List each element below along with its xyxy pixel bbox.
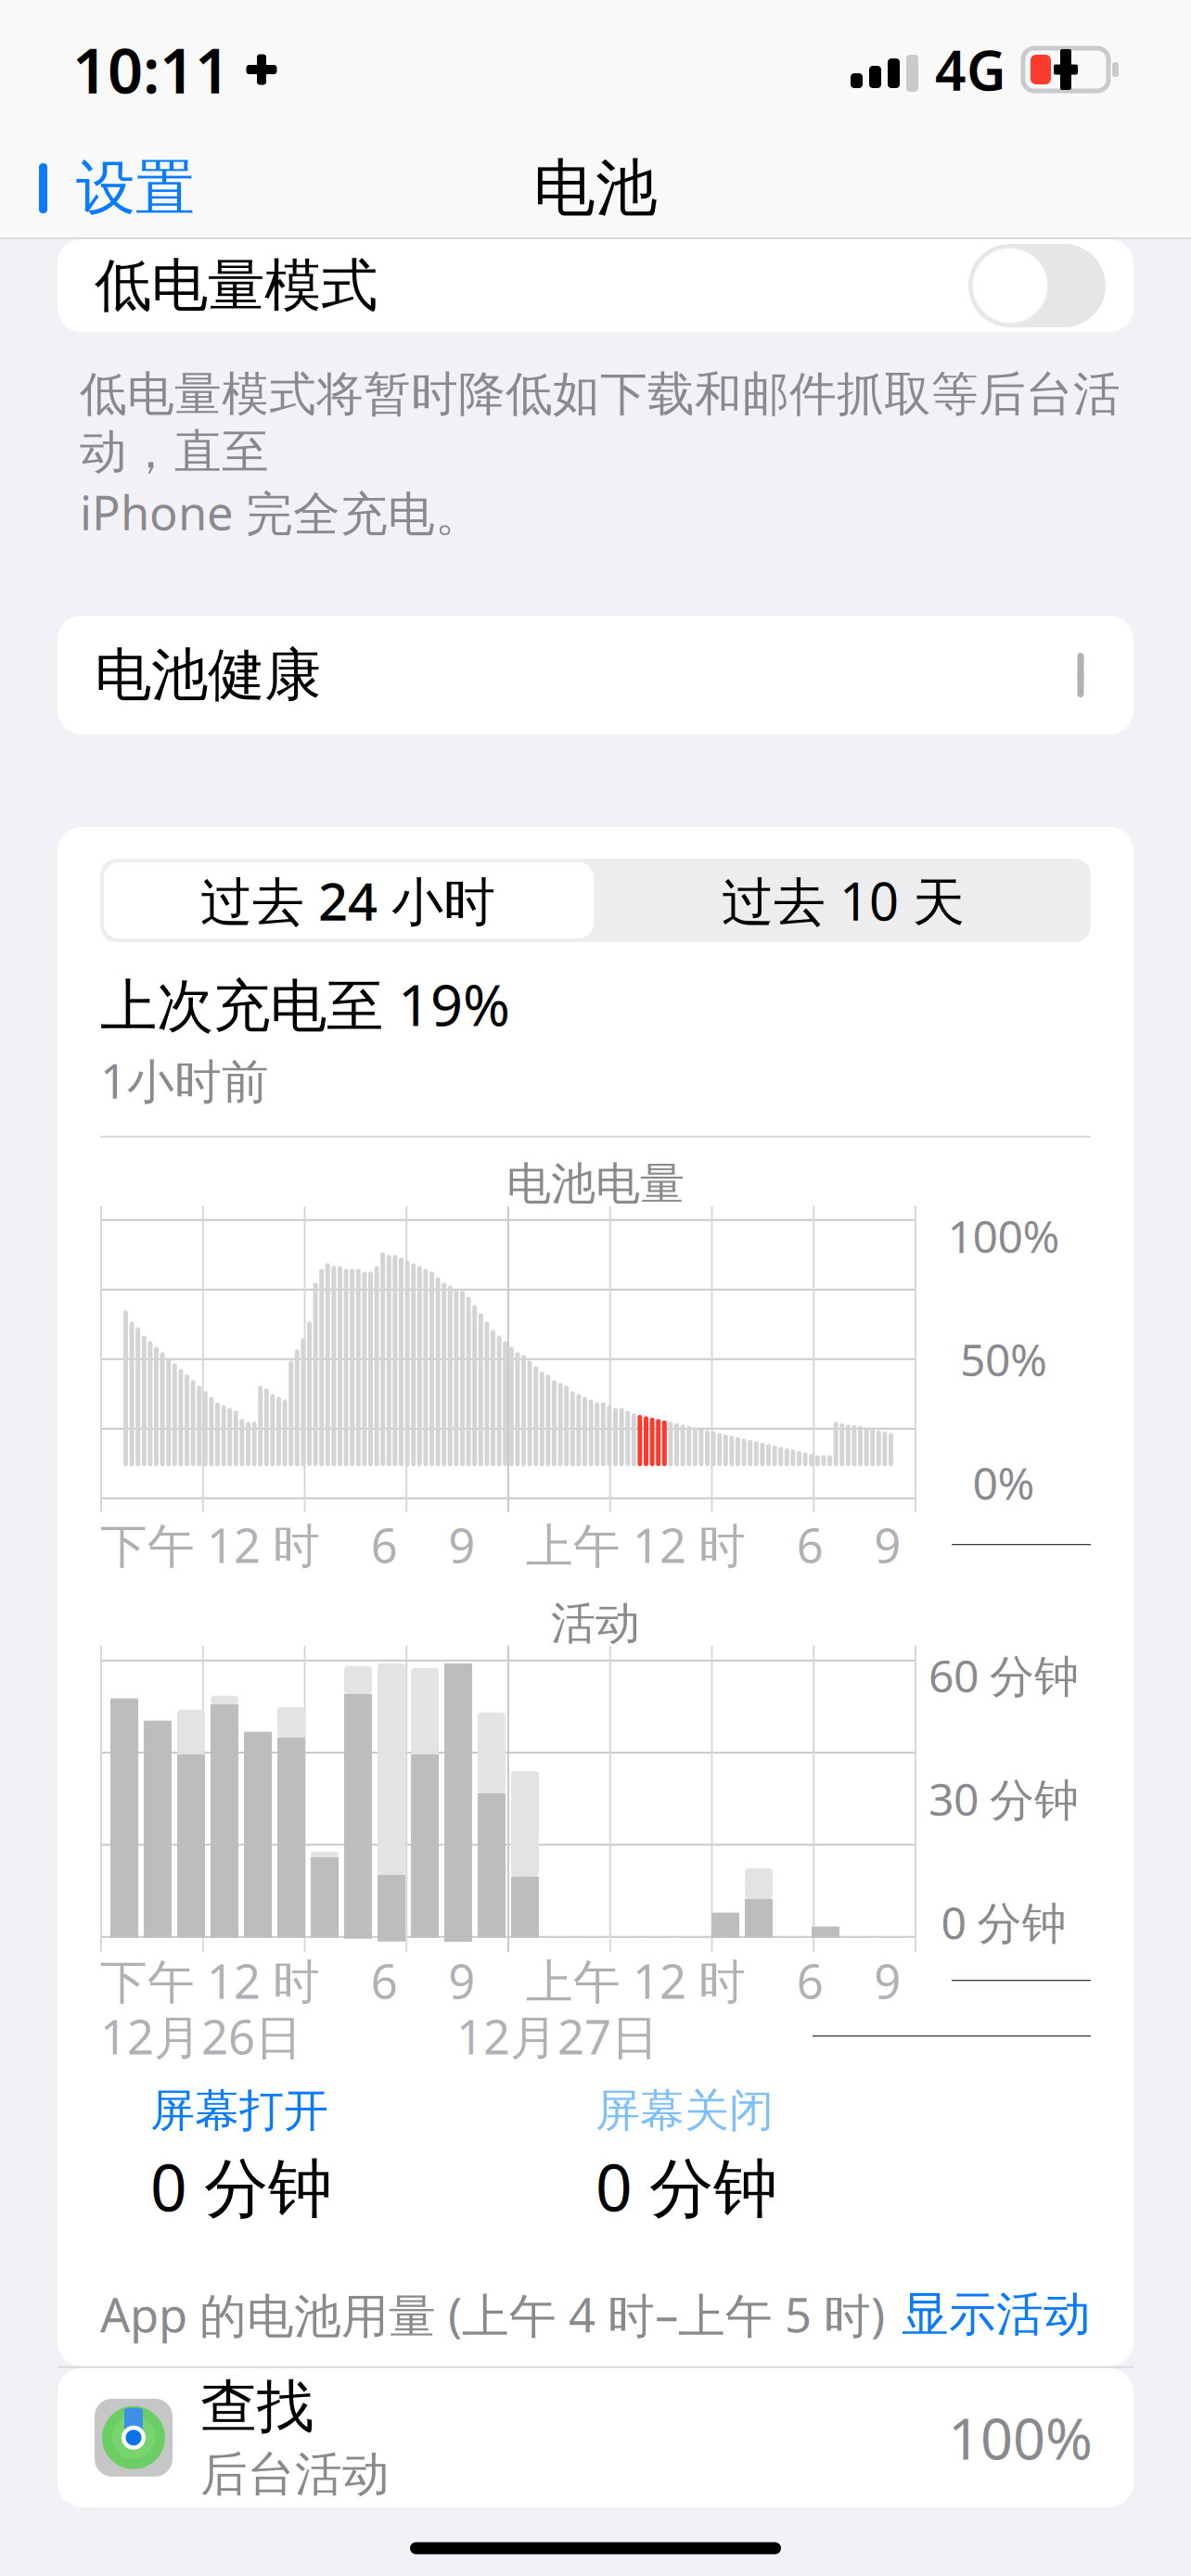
staticText: 9 bbox=[874, 1513, 901, 1576]
staticText: 过去 10 天 bbox=[722, 866, 965, 935]
staticText: 上次充电至 19% bbox=[100, 966, 510, 1042]
staticText: 查找 bbox=[200, 2372, 314, 2442]
staticText: 活动 bbox=[551, 1596, 640, 1651]
staticText: 电池电量 bbox=[506, 1157, 685, 1211]
staticText: 1小时前 bbox=[100, 1049, 269, 1112]
staticText: 下午 12 时 bbox=[100, 1513, 320, 1576]
button[interactable]: 低电量模式开关 bbox=[968, 244, 1106, 327]
staticText: 4G bbox=[935, 33, 1006, 106]
staticText: 12月27日 bbox=[456, 2005, 659, 2067]
staticText: 10:11 bbox=[72, 28, 230, 111]
button[interactable]: 过去 24 小时 bbox=[100, 859, 595, 942]
staticText: 6 bbox=[371, 1513, 398, 1576]
staticText: 电池 bbox=[533, 150, 658, 226]
staticText: 50% bbox=[960, 1330, 1047, 1389]
staticText: 6 bbox=[797, 1513, 823, 1576]
staticText: 100% bbox=[948, 1206, 1060, 1265]
staticText: 显示每款 App 的耗电量比例。 bbox=[80, 2539, 713, 2576]
button[interactable]: 显示活动 bbox=[902, 2285, 1091, 2343]
staticText: 设置 bbox=[76, 152, 195, 225]
staticText: 屏幕打开 bbox=[150, 2083, 328, 2138]
staticText: 100% bbox=[948, 2400, 1093, 2475]
staticText: 电池健康 bbox=[95, 640, 321, 710]
staticText: 9 bbox=[448, 1513, 475, 1576]
staticText: 后台活动 bbox=[200, 2446, 390, 2503]
staticText: 低电量模式 bbox=[95, 251, 378, 320]
staticText: 9 bbox=[448, 1949, 475, 2012]
button[interactable]: 过去 10 天 bbox=[595, 859, 1091, 942]
staticText: 下午 12 时 bbox=[100, 1949, 320, 2012]
staticText: 0 分钟 bbox=[595, 2144, 777, 2229]
staticText: App 的电池用量 (上午 4 时–上午 5 时) bbox=[100, 2283, 885, 2346]
button[interactable]: 设置 bbox=[0, 143, 213, 234]
staticText: 6 bbox=[797, 1949, 823, 2012]
button[interactable]: 查找 bbox=[58, 2368, 1133, 2507]
staticText: 60 分钟 bbox=[928, 1646, 1079, 1705]
staticText: 上午 12 时 bbox=[526, 1513, 746, 1576]
staticText: 0 分钟 bbox=[941, 1893, 1066, 1952]
button[interactable]: 电池健康 bbox=[58, 616, 1133, 734]
staticText: 低电量模式将暂时降低如下载和邮件抓取等后台活动，直至 iPhone 完全充电。 bbox=[80, 365, 1121, 543]
staticText: 0% bbox=[973, 1453, 1035, 1512]
staticText: 12月26日 bbox=[100, 2005, 302, 2067]
staticText: 30 分钟 bbox=[928, 1769, 1079, 1828]
staticText: 6 bbox=[371, 1949, 398, 2012]
staticText: 屏幕关闭 bbox=[595, 2083, 774, 2138]
staticText: 0 分钟 bbox=[150, 2144, 332, 2229]
staticText: 9 bbox=[874, 1949, 901, 2012]
staticText: 过去 24 小时 bbox=[200, 866, 495, 935]
staticText: 上午 12 时 bbox=[526, 1949, 746, 2012]
staticText: 显示活动 bbox=[902, 2285, 1091, 2343]
